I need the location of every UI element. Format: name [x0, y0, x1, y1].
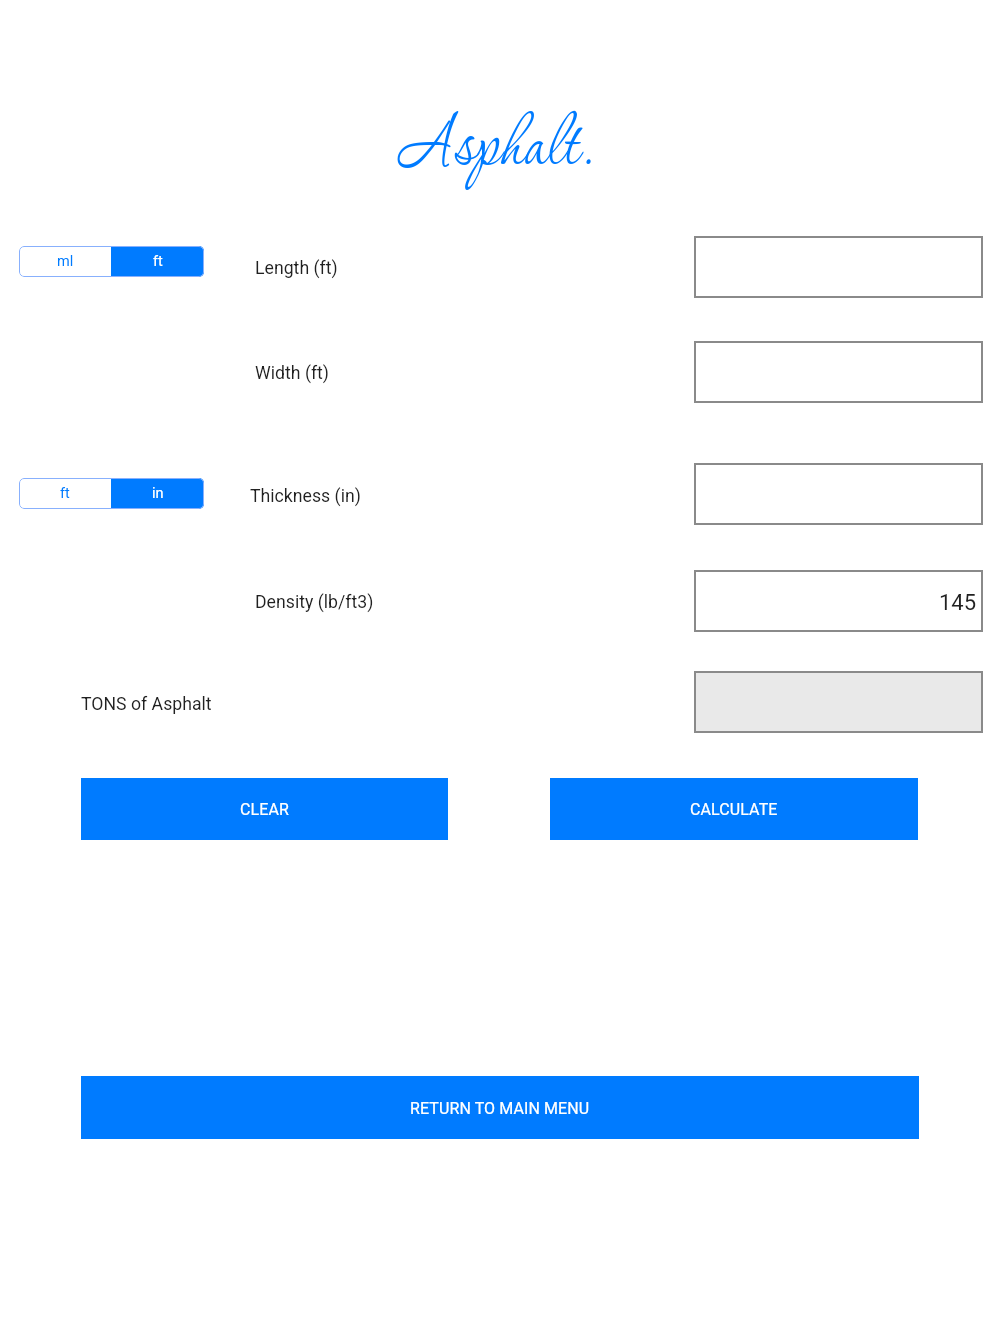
staticText: TONS of Asphalt — [81, 694, 212, 715]
button[interactable]: Thickness — [694, 463, 983, 525]
staticText: CALCULATE — [690, 800, 778, 819]
staticText: RETURN TO MAIN MENU — [410, 1099, 590, 1118]
staticText: ft — [153, 253, 163, 270]
button[interactable]: CALCULATE — [550, 778, 918, 840]
staticText: Length (ft) — [255, 258, 338, 279]
staticText: ml — [57, 253, 74, 270]
staticText: ft — [60, 485, 70, 502]
button[interactable]: ft — [19, 478, 111, 509]
button[interactable]: Density — [694, 570, 983, 632]
button[interactable]: Width — [694, 341, 983, 403]
button[interactable]: ft — [111, 246, 204, 277]
staticText: CLEAR — [240, 800, 289, 819]
staticText: Width (ft) — [255, 363, 330, 384]
button[interactable]: Length — [694, 236, 983, 298]
staticText: in — [152, 485, 164, 502]
staticText: Density (lb/ft3) — [255, 592, 374, 613]
button[interactable]: RETURN TO MAIN MENU — [81, 1076, 919, 1139]
button[interactable]: CLEAR — [81, 778, 448, 840]
button[interactable]: in — [111, 478, 204, 509]
staticText: Thickness (in) — [250, 486, 361, 507]
staticText: 145 — [939, 590, 977, 616]
button[interactable]: ml — [19, 246, 111, 277]
button[interactable]: Tons of asphalt result — [694, 671, 983, 733]
staticText: Asphalt. — [396, 95, 593, 202]
